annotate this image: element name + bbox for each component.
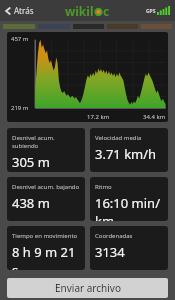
staticText: Ritmo — [95, 183, 112, 191]
button[interactable]: 457 m — [7, 32, 168, 122]
button[interactable]: Ritmo — [90, 177, 168, 221]
button[interactable]: Desnivel acum. bajando — [7, 177, 85, 221]
staticText: Enviar archivo — [55, 281, 121, 295]
staticText: 17.2 km — [87, 113, 110, 121]
staticText: 457 m — [11, 35, 29, 43]
button[interactable]: Tiempo en movimiento — [7, 226, 85, 270]
button[interactable]: Enviar archivo — [7, 278, 168, 298]
staticText: 3.71 km/h — [95, 145, 157, 163]
staticText: 16:10 min/km — [95, 194, 165, 221]
button[interactable]: Atrás — [0, 2, 40, 19]
staticText: Velocidad media — [95, 134, 142, 142]
button[interactable]: Velocidad media — [90, 128, 168, 172]
staticText: 8 h 9 m 21 s — [12, 243, 82, 270]
other: GPS signal — [146, 6, 170, 15]
staticText: Coordenadas — [95, 232, 133, 240]
staticText: 34.4 km — [143, 113, 166, 121]
staticText: wikil — [65, 3, 94, 19]
button[interactable]: Coordenadas — [90, 226, 168, 270]
staticText: Tiempo en movimiento — [12, 232, 78, 240]
staticText: 438 m — [12, 194, 50, 212]
button[interactable]: Desnivel acum. subiendo — [7, 128, 85, 172]
staticText: GPS — [146, 8, 156, 15]
staticText: Desnivel acum. bajando — [12, 183, 80, 191]
staticText: c — [103, 3, 110, 19]
staticText: Desnivel acum. subiendo — [12, 134, 82, 150]
staticText: 3134 — [95, 243, 125, 261]
staticText: 219 m — [11, 104, 29, 112]
staticText: 305 m — [12, 153, 50, 171]
staticText: Atrás — [14, 5, 34, 16]
